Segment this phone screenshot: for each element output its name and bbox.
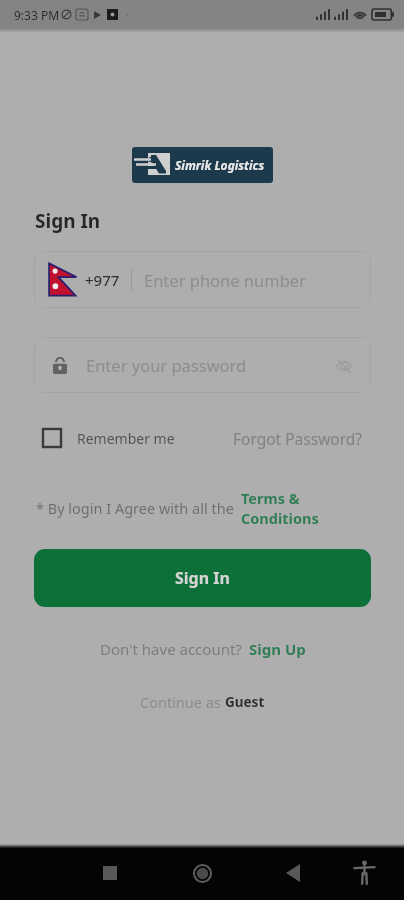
button[interactable]: Home [182, 853, 222, 893]
button[interactable]: Accessibility [344, 852, 384, 892]
staticText: Continue as [140, 692, 225, 712]
staticText: Don't have account? [100, 639, 242, 659]
staticText: Sign Up [249, 639, 306, 659]
staticText: Guest [225, 693, 265, 711]
button[interactable]: +977 [34, 251, 371, 308]
staticText: Simrik Logistics [175, 157, 265, 173]
button[interactable]: Continue as [34, 692, 371, 712]
button[interactable]: Enter your password [34, 337, 371, 393]
button[interactable]: Recents [90, 853, 130, 893]
button[interactable]: Sign Up [249, 639, 306, 659]
staticText: Sign In [35, 208, 101, 234]
staticText: 9:33 PM [14, 7, 60, 23]
staticText: Remember me [77, 429, 175, 448]
staticText: Sign In [175, 567, 230, 589]
staticText: * By login I Agree with all the [36, 498, 234, 518]
staticText: Enter phone number [144, 269, 306, 291]
button[interactable]: Remember me [34, 428, 183, 448]
staticText: Enter your password [86, 354, 247, 376]
button[interactable]: Back [273, 853, 313, 893]
button[interactable]: Forgot Password? [233, 428, 371, 449]
staticText: Terms & Conditions [241, 488, 323, 528]
button[interactable]: Terms & Conditions [241, 488, 323, 528]
button[interactable]: Simrik Logistics [132, 147, 273, 183]
button[interactable]: Show password [335, 357, 353, 374]
button[interactable]: Sign In [34, 549, 371, 607]
staticText: +977 [85, 270, 120, 290]
staticText: Forgot Password? [233, 428, 363, 449]
